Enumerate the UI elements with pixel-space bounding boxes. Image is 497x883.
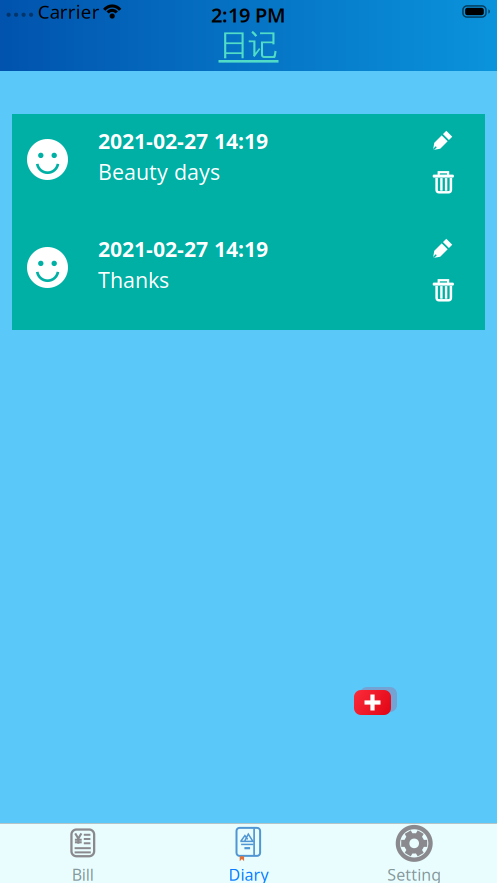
staticText: Diary <box>228 864 268 883</box>
button[interactable]: Edit <box>432 239 452 258</box>
button[interactable]: Diary <box>166 823 331 883</box>
staticText: 日记 <box>219 27 277 63</box>
button[interactable]: Add diary entry <box>354 685 397 715</box>
staticText: 2:19 PM <box>211 1 286 28</box>
staticText: Thanks <box>98 265 169 294</box>
staticText: Carrier <box>38 0 100 24</box>
button[interactable]: Setting <box>331 823 497 883</box>
button[interactable]: Delete <box>432 170 454 194</box>
staticText: Setting <box>387 864 441 883</box>
button[interactable]: Delete <box>432 278 454 302</box>
button[interactable]: Bill <box>0 823 166 883</box>
staticText: Beauty days <box>98 157 220 186</box>
staticText: Bill <box>72 864 94 883</box>
button[interactable]: Edit <box>432 131 452 150</box>
staticText: 2021-02-27 14:19 <box>98 234 268 263</box>
staticText: 2021-02-27 14:19 <box>98 126 268 155</box>
